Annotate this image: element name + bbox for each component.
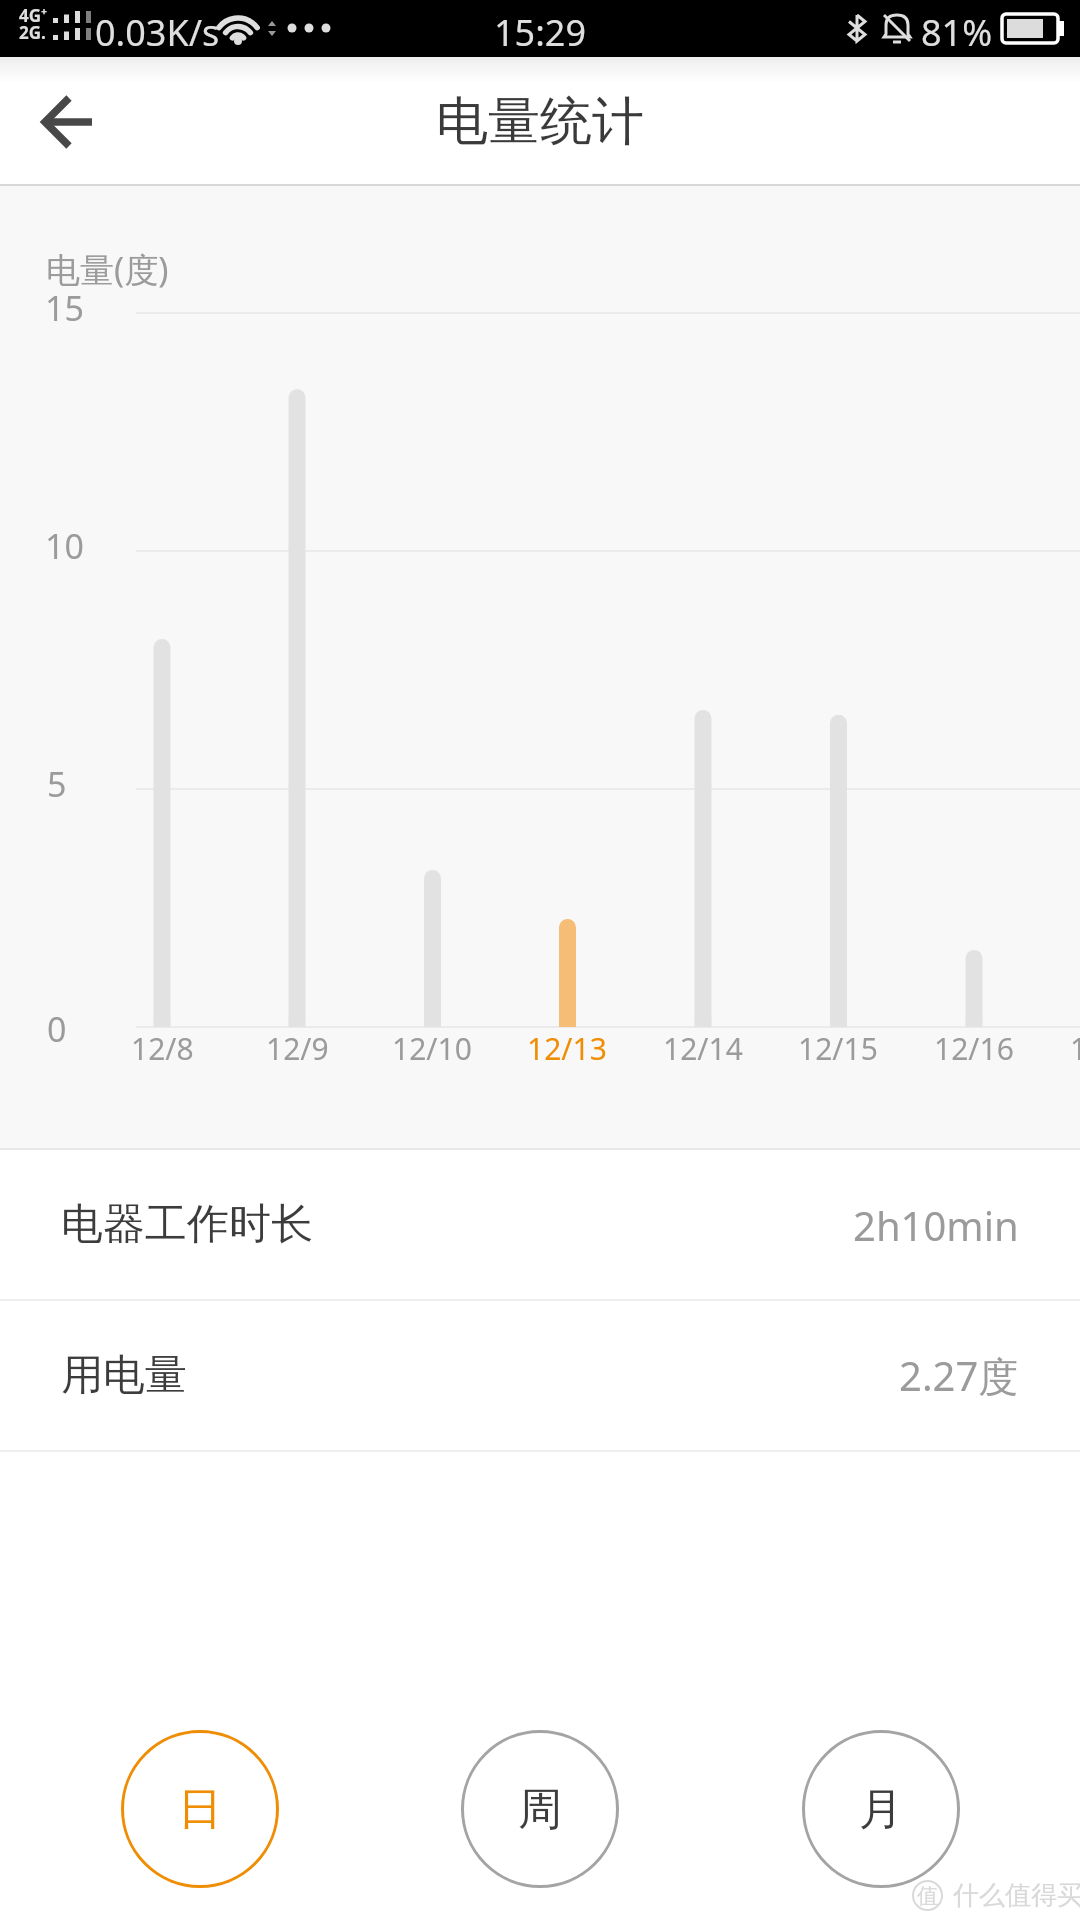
button[interactable]: 用电量 [0, 1301, 1080, 1450]
staticText: 周 [518, 1782, 562, 1837]
staticText: 12/16 [934, 1028, 1014, 1069]
staticText: 什么值得买 [953, 1879, 1080, 1912]
staticText: 12/9 [266, 1028, 329, 1069]
staticText: 81% [921, 8, 993, 57]
staticText: 10 [45, 523, 84, 569]
button[interactable] [18, 72, 118, 172]
staticText: 日 [178, 1782, 222, 1837]
button[interactable]: 电器工作时长 [0, 1150, 1080, 1299]
button[interactable]: 月 [802, 1730, 960, 1888]
staticText: 12/17 [1070, 1028, 1080, 1069]
staticText: 12/14 [663, 1028, 743, 1069]
staticText: 电量统计 [436, 89, 644, 155]
staticText: 电量(度) [46, 246, 169, 292]
staticText: 2.27度 [899, 1348, 1019, 1403]
staticText: 2G. [19, 21, 46, 44]
staticText: 电器工作时长 [61, 1198, 313, 1251]
staticText: 5 [47, 761, 67, 807]
staticText: 用电量 [61, 1349, 187, 1402]
staticText: 12/8 [131, 1028, 194, 1069]
staticText: 月 [859, 1782, 903, 1837]
staticText: 0.03K/s [95, 8, 220, 57]
staticText: 12/13 [527, 1028, 607, 1069]
staticText: 2h10min [853, 1198, 1019, 1252]
staticText: 15 [45, 285, 84, 331]
button[interactable]: 周 [461, 1730, 619, 1888]
staticText: 4G⁺ [19, 4, 48, 27]
staticText: 12/10 [392, 1028, 472, 1069]
staticText: 15:29 [494, 8, 587, 57]
staticText: 12/15 [798, 1028, 878, 1069]
staticText: 0 [47, 1006, 67, 1052]
staticText: 值 [917, 1883, 938, 1909]
button[interactable]: 日 [121, 1730, 279, 1888]
